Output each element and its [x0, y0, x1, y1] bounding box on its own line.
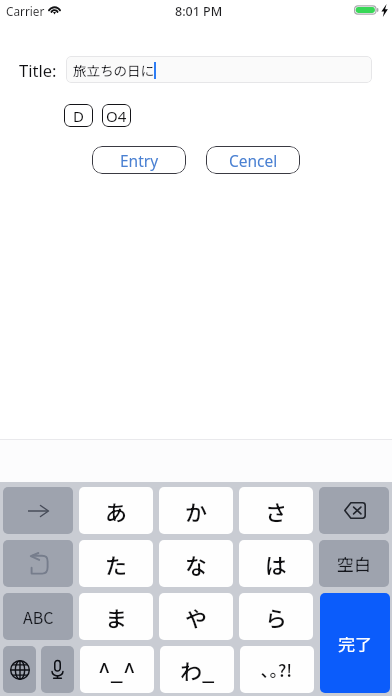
- button[interactable]: ABC: [3, 593, 73, 640]
- staticText: か: [185, 495, 208, 527]
- staticText: O4: [106, 106, 127, 126]
- staticText: Cencel: [229, 150, 278, 171]
- staticText: は: [265, 548, 288, 580]
- button[interactable]: あ: [79, 487, 153, 534]
- staticText: Entry: [120, 150, 159, 171]
- button[interactable]: た: [79, 540, 153, 587]
- button[interactable]: な: [159, 540, 233, 587]
- staticText: わ_: [180, 654, 215, 686]
- staticText: な: [185, 548, 208, 580]
- staticText: Title:: [19, 59, 57, 81]
- button[interactable]: ^_^: [80, 646, 154, 693]
- button[interactable]: や: [159, 593, 233, 640]
- staticText: 8:01 PM: [175, 3, 223, 20]
- button[interactable]: わ_: [160, 646, 234, 693]
- button[interactable]: Backspace: [319, 487, 389, 534]
- button[interactable]: O4: [102, 104, 131, 127]
- button[interactable]: Entry: [92, 146, 186, 174]
- staticText: た: [105, 548, 128, 580]
- button[interactable]: か: [159, 487, 233, 534]
- button[interactable]: ､｡?!: [240, 646, 314, 693]
- staticText: あ: [105, 495, 128, 527]
- staticText: D: [73, 106, 84, 126]
- button[interactable]: Switch language: [3, 646, 36, 693]
- button[interactable]: 完了: [320, 593, 390, 693]
- button[interactable]: さ: [239, 487, 313, 534]
- staticText: さ: [265, 495, 288, 527]
- staticText: や: [185, 601, 208, 633]
- staticText: 完了: [338, 631, 372, 656]
- staticText: ま: [105, 601, 128, 633]
- button[interactable]: Undo: [3, 540, 73, 587]
- button[interactable]: Dictation: [41, 646, 74, 693]
- button[interactable]: D: [64, 104, 93, 127]
- staticText: 旅立ちの日に: [73, 60, 154, 80]
- staticText: ABC: [23, 605, 54, 628]
- staticText: ら: [265, 601, 288, 633]
- button[interactable]: Next: [3, 487, 73, 534]
- button[interactable]: ら: [239, 593, 313, 640]
- staticText: 空白: [337, 551, 371, 576]
- staticText: Carrier: [6, 3, 45, 19]
- button[interactable]: ま: [79, 593, 153, 640]
- button[interactable]: Cencel: [206, 146, 300, 174]
- button[interactable]: 空白: [319, 540, 389, 587]
- staticText: ､｡?!: [261, 657, 293, 682]
- button[interactable]: は: [239, 540, 313, 587]
- button[interactable]: 旅立ちの日に: [66, 56, 372, 83]
- staticText: ^_^: [98, 654, 136, 686]
